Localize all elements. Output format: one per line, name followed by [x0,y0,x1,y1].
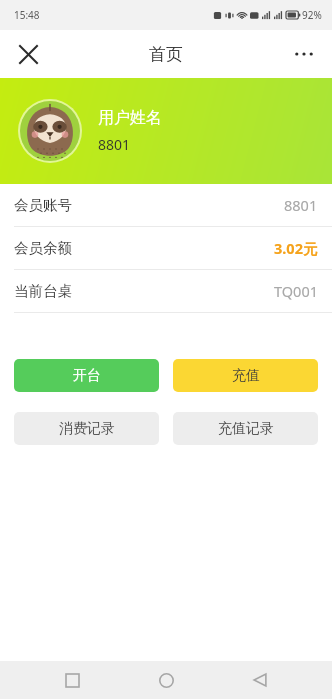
button[interactable]: Back [238,661,282,699]
button[interactable]: Recent apps [50,661,94,699]
staticText: 15:48 [14,8,40,22]
button[interactable]: 充值 [173,359,318,392]
staticText: 用户姓名 [98,108,162,128]
button[interactable]: 充值记录 [173,412,318,445]
staticText: 开台 [73,367,101,385]
button[interactable]: 开台 [14,359,159,392]
staticText: 充值记录 [218,420,274,438]
staticText: 当前台桌 [14,282,72,300]
button[interactable]: Home [144,661,188,699]
staticText: TQ001 [274,281,318,301]
button[interactable]: 会员账号 [0,184,332,226]
button[interactable]: More options [284,34,324,74]
staticText: 消费记录 [59,420,115,438]
button[interactable]: 当前台桌 [0,270,332,312]
button[interactable]: Close [8,34,48,74]
staticText: 8801 [98,135,131,154]
staticText: 8801 [284,195,318,215]
staticText: 充值 [232,367,260,385]
staticText: 会员余额 [14,239,72,257]
staticText: 3.02元 [274,238,318,258]
staticText: 92% [302,8,322,22]
staticText: 会员账号 [14,196,72,214]
staticText: 首页 [149,44,183,65]
button[interactable]: 用户姓名 [0,78,332,184]
button[interactable]: 消费记录 [14,412,159,445]
button[interactable]: 会员余额 [0,227,332,269]
